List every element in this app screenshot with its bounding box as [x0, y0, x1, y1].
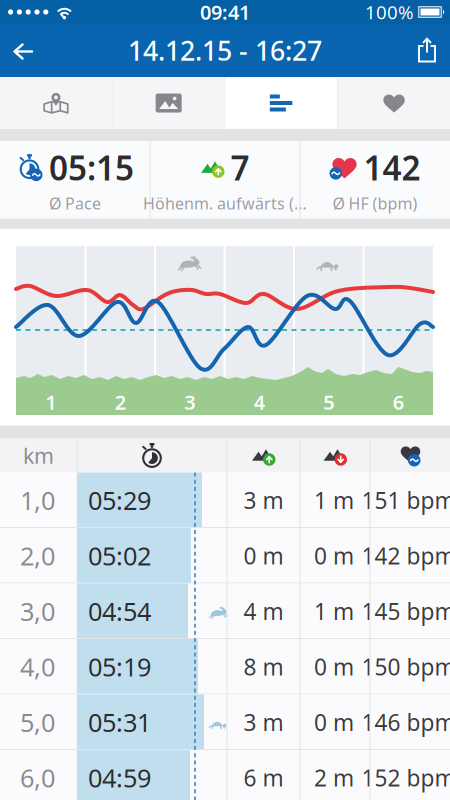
button[interactable]: Back: [0, 40, 34, 60]
staticText: 1 m: [314, 596, 354, 626]
button[interactable]: Share: [417, 37, 450, 63]
staticText: 05:02: [88, 539, 151, 572]
staticText: 150 bpm: [361, 652, 450, 682]
staticText: 0 m: [314, 652, 354, 682]
staticText: 3 m: [243, 707, 283, 737]
staticText: 6: [393, 389, 404, 415]
staticText: 05:31: [88, 705, 151, 739]
staticText: 142 bpm: [361, 541, 450, 571]
staticText: 1,0: [20, 483, 55, 517]
staticText: 14.12.15 - 16:27: [128, 33, 322, 68]
button[interactable]: Charts: [225, 77, 337, 129]
staticText: 145 bpm: [361, 596, 450, 626]
staticText: 8 m: [243, 652, 283, 682]
staticText: 5,0: [20, 705, 55, 739]
staticText: Höhenm. aufwärts (…: [143, 193, 307, 214]
staticText: 3,0: [20, 594, 55, 628]
staticText: 2,0: [20, 539, 55, 572]
staticText: 6 m: [243, 763, 283, 793]
staticText: km: [23, 441, 54, 470]
staticText: 3: [184, 389, 195, 415]
staticText: 2 m: [314, 763, 354, 793]
staticText: 1 m: [314, 485, 354, 515]
staticText: 6,0: [20, 761, 55, 794]
staticText: 0 m: [243, 541, 283, 571]
staticText: Ø Pace: [49, 193, 101, 214]
staticText: 4: [254, 389, 265, 415]
staticText: 09:41: [200, 0, 250, 25]
staticText: 7: [230, 145, 249, 190]
staticText: 146 bpm: [361, 707, 450, 737]
staticText: 142: [363, 145, 420, 190]
staticText: 0 m: [314, 707, 354, 737]
staticText: 1: [45, 389, 56, 415]
button[interactable]: Photos: [113, 77, 225, 129]
staticText: 05:29: [88, 483, 151, 517]
staticText: 05:19: [88, 650, 151, 683]
staticText: 2: [115, 389, 126, 415]
staticText: 05:15: [49, 145, 134, 190]
staticText: Ø HF (bpm): [332, 193, 417, 214]
staticText: 152 bpm: [361, 763, 450, 793]
staticText: 0 m: [314, 541, 354, 571]
staticText: 4 m: [243, 596, 283, 626]
staticText: 04:54: [88, 594, 151, 628]
staticText: 151 bpm: [361, 485, 450, 515]
staticText: 100%: [365, 0, 414, 24]
button[interactable]: Heart rate: [338, 77, 450, 129]
button[interactable]: Map: [0, 77, 112, 129]
staticText: 04:59: [88, 761, 151, 794]
staticText: 5: [323, 389, 334, 415]
staticText: 3 m: [243, 485, 283, 515]
staticText: 4,0: [20, 650, 55, 683]
